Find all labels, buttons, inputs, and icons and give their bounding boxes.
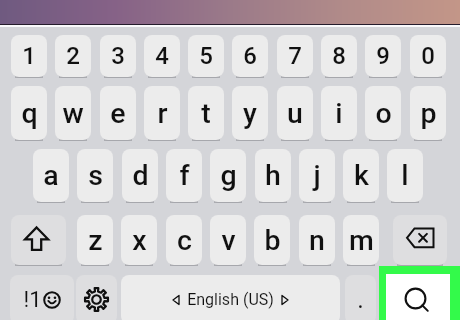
staticText: s xyxy=(88,159,103,192)
staticText: o xyxy=(375,97,392,130)
button[interactable]: h xyxy=(255,149,291,202)
button[interactable]: k xyxy=(343,149,379,202)
button[interactable]: o xyxy=(365,86,401,140)
button[interactable]: v xyxy=(210,215,246,265)
staticText: m xyxy=(349,224,374,257)
staticText: 2 xyxy=(66,42,80,70)
staticText: 4 xyxy=(155,42,169,70)
button[interactable]: 6 xyxy=(232,35,268,77)
staticText: w xyxy=(62,97,84,130)
staticText: t xyxy=(201,97,211,130)
button[interactable]: Backspace xyxy=(393,215,447,265)
button[interactable]: b xyxy=(254,215,290,265)
staticText: y xyxy=(243,97,257,130)
staticText: c xyxy=(177,224,192,257)
staticText: r xyxy=(157,97,168,130)
staticText: g xyxy=(220,159,237,192)
button[interactable]: r xyxy=(144,86,180,140)
staticText: j xyxy=(313,159,321,192)
button[interactable]: a xyxy=(33,149,69,202)
button[interactable]: m xyxy=(343,215,379,265)
staticText: 3 xyxy=(111,42,125,70)
button[interactable]: t xyxy=(188,86,224,140)
button[interactable]: Symbols and emoji xyxy=(10,275,74,320)
staticText: !1 xyxy=(23,287,42,313)
button[interactable]: 9 xyxy=(365,35,401,77)
button[interactable]: j xyxy=(299,149,335,202)
staticText: h xyxy=(265,159,281,192)
staticText: p xyxy=(420,97,437,130)
staticText: z xyxy=(88,224,103,257)
button[interactable]: Space xyxy=(121,275,340,320)
button[interactable]: e xyxy=(100,86,136,140)
staticText: a xyxy=(43,159,59,192)
staticText: . xyxy=(357,285,364,314)
button[interactable]: u xyxy=(277,86,313,140)
staticText: 8 xyxy=(332,42,346,70)
staticText: f xyxy=(179,159,190,192)
button[interactable]: n xyxy=(299,215,335,265)
button[interactable]: c xyxy=(166,215,202,265)
staticText: 6 xyxy=(243,42,257,70)
button[interactable]: y xyxy=(232,86,268,140)
staticText: 1 xyxy=(22,42,36,70)
button[interactable]: w xyxy=(55,86,91,140)
staticText: l xyxy=(401,159,409,192)
button[interactable]: . xyxy=(345,275,376,320)
staticText: q xyxy=(21,97,38,130)
staticText: e xyxy=(110,97,126,130)
button[interactable]: Shift xyxy=(11,215,66,265)
staticText: 0 xyxy=(421,42,435,70)
button[interactable]: 5 xyxy=(188,35,224,77)
staticText: x xyxy=(132,224,147,257)
button[interactable]: d xyxy=(122,149,158,202)
button[interactable]: 8 xyxy=(321,35,357,77)
button[interactable]: 1 xyxy=(11,35,47,77)
button[interactable]: l xyxy=(387,149,423,202)
button[interactable]: 2 xyxy=(55,35,91,77)
button[interactable]: i xyxy=(321,86,357,140)
button[interactable]: 3 xyxy=(100,35,136,77)
button[interactable]: z xyxy=(77,215,113,265)
button[interactable]: Search xyxy=(386,274,450,320)
staticText: k xyxy=(354,159,369,192)
staticText: 7 xyxy=(288,42,302,70)
staticText: 5 xyxy=(199,42,213,70)
button[interactable]: g xyxy=(210,149,246,202)
button[interactable]: p xyxy=(410,86,446,140)
staticText: u xyxy=(287,97,303,130)
button[interactable]: 4 xyxy=(144,35,180,77)
button[interactable]: s xyxy=(77,149,113,202)
button[interactable]: f xyxy=(166,149,202,202)
button[interactable]: 7 xyxy=(277,35,313,77)
button[interactable]: 0 xyxy=(410,35,446,77)
staticText: 9 xyxy=(376,42,390,70)
staticText: v xyxy=(221,224,236,257)
staticText: English (US) xyxy=(187,290,274,309)
staticText: d xyxy=(132,159,149,192)
button[interactable]: q xyxy=(11,86,47,140)
staticText: i xyxy=(335,97,343,130)
staticText: n xyxy=(309,224,325,257)
staticText: b xyxy=(264,224,281,257)
button[interactable]: Settings xyxy=(76,275,117,320)
button[interactable]: x xyxy=(121,215,157,265)
